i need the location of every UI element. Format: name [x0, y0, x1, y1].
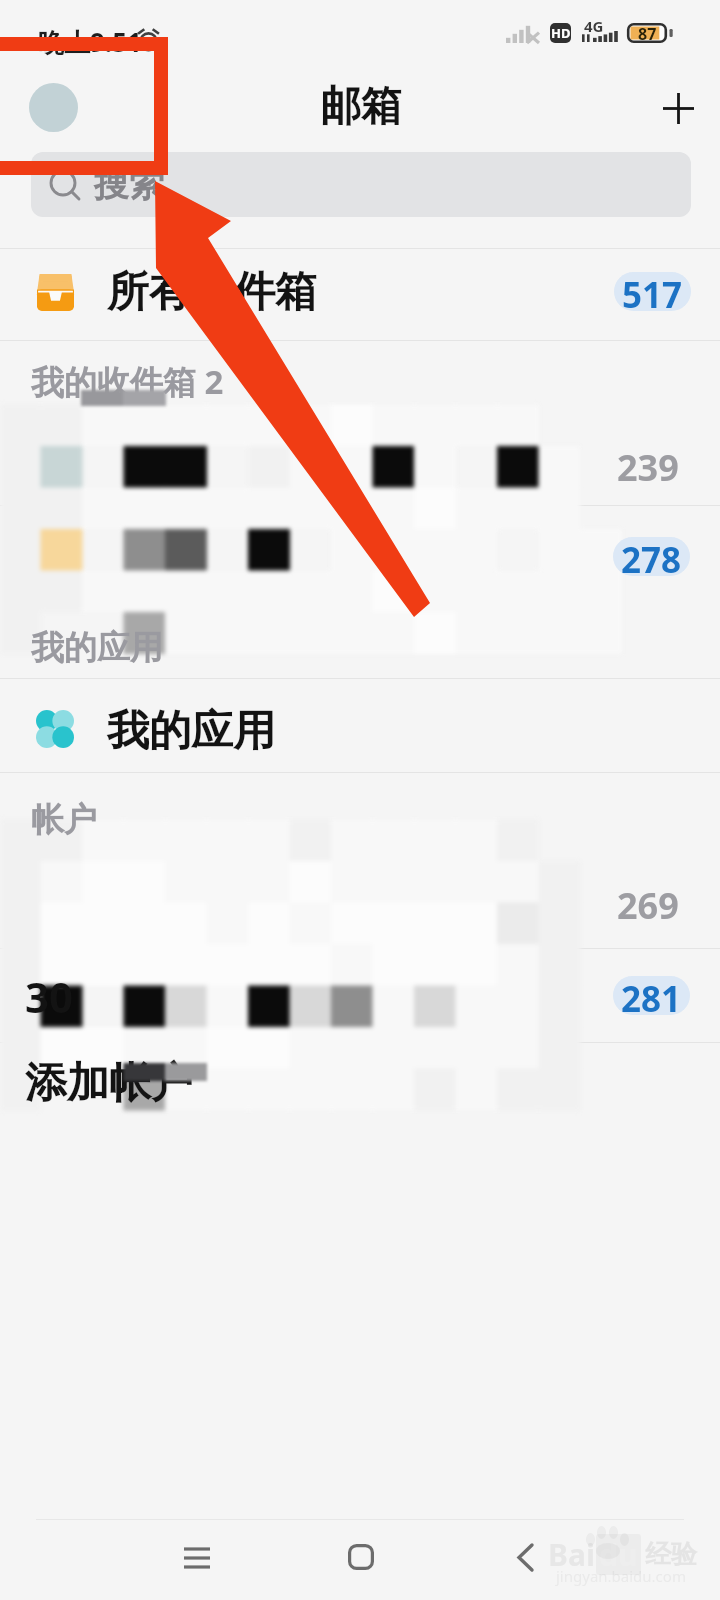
staticText: 30 [25, 968, 74, 1025]
staticText: jingyan.baidu.com [556, 1566, 686, 1586]
staticText: 我的应用 [107, 705, 275, 758]
staticText: 经验 [645, 1538, 697, 1571]
staticText: 239 [617, 443, 679, 492]
button[interactable]: Recent apps [156, 1516, 238, 1598]
button[interactable] [0, 249, 720, 340]
button[interactable]: Back [484, 1516, 566, 1598]
staticText: 所有收件箱 [107, 266, 317, 319]
staticText: 281 [621, 976, 682, 1014]
button[interactable]: Home [320, 1516, 402, 1598]
staticText: Bai [548, 1534, 595, 1575]
button[interactable]: Account [29, 83, 78, 132]
staticText: 278 [621, 537, 682, 575]
staticText: 邮箱 [320, 81, 402, 133]
staticText: 87 [638, 23, 657, 45]
staticText: 晚上9:51 [38, 24, 142, 60]
staticText: 添加帐户 [25, 1057, 193, 1110]
staticText: du [599, 1534, 638, 1575]
staticText: 4G [584, 16, 604, 36]
button[interactable]: 搜索 [31, 152, 691, 217]
button[interactable]: 281 [613, 976, 690, 1015]
staticText: 我的应用 [31, 627, 163, 669]
button[interactable]: 517 [614, 272, 691, 311]
staticText: 517 [622, 272, 683, 310]
staticText: 我的收件箱 2 [31, 359, 224, 404]
staticText: 帐户 [31, 799, 97, 841]
staticText: HD [551, 24, 571, 42]
staticText: 269 [617, 881, 679, 930]
button[interactable]: 278 [613, 537, 690, 576]
staticText: 搜索 [94, 162, 164, 206]
button[interactable] [0, 679, 720, 771]
button[interactable]: New message [648, 78, 708, 138]
